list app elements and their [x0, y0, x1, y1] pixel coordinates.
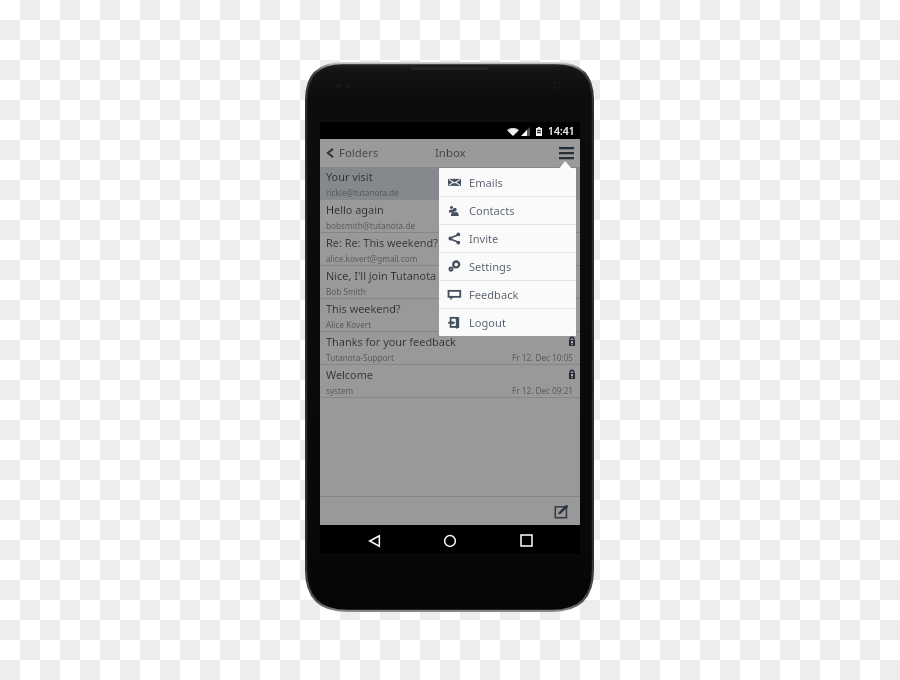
button[interactable]: Settings [439, 253, 576, 280]
staticText: Hello again [326, 202, 575, 217]
staticText: Re: Re: This weekend? [326, 235, 575, 250]
staticText: Tutanota-Support [326, 352, 512, 363]
button[interactable]: Emails [439, 168, 576, 196]
staticText: Your visit [326, 169, 575, 184]
staticText: Fr 12. Dec 10:05 [512, 352, 574, 363]
staticText: Alice Kovert [326, 319, 574, 330]
staticText: 14:41 [548, 124, 575, 138]
button[interactable]: Folders [320, 139, 385, 167]
button[interactable]: Contacts [439, 197, 576, 224]
button[interactable]: Home [436, 526, 464, 555]
button[interactable]: Thanks for your feedback [320, 332, 580, 365]
staticText: Nice, I'll join Tutanota [326, 268, 575, 283]
staticText: system [326, 385, 512, 396]
staticText: This weekend? [326, 301, 575, 316]
button[interactable]: Re: Re: This weekend? [320, 233, 580, 266]
staticText: Fr 12. Dec 09:21 [512, 385, 574, 396]
button[interactable]: Your visit [320, 167, 580, 200]
staticText: Welcome [326, 367, 569, 382]
staticText: Contacts [469, 203, 515, 218]
staticText: Emails [469, 175, 503, 190]
button[interactable]: Welcome [320, 365, 580, 398]
button[interactable]: Nice, I'll join Tutanota [320, 266, 580, 299]
staticText: Folders [339, 145, 379, 161]
staticText: Invite [469, 231, 499, 246]
staticText: Bob Smith [326, 286, 574, 297]
staticText: Thanks for your feedback [326, 334, 569, 349]
button[interactable]: Compose new mail [543, 497, 580, 525]
button[interactable]: Feedback [439, 281, 576, 308]
staticText: Inbox [435, 145, 466, 161]
button[interactable]: Menu [553, 139, 580, 167]
button[interactable]: Back [360, 526, 388, 555]
button[interactable]: Logout [439, 309, 576, 336]
staticText: Logout [469, 315, 506, 330]
staticText: Feedback [469, 287, 519, 302]
button[interactable]: Recent apps [512, 526, 540, 555]
staticText: alice.kovert@gmail.com [326, 253, 574, 264]
button[interactable]: Invite [439, 225, 576, 252]
staticText: rickie@tutanota.de [326, 187, 574, 198]
button[interactable]: This weekend? [320, 299, 580, 332]
staticText: Settings [469, 259, 512, 274]
button[interactable]: Hello again [320, 200, 580, 233]
staticText: bobsmith@tutanota.de [326, 220, 574, 231]
